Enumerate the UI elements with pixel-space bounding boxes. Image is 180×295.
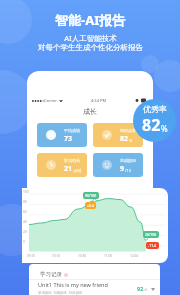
staticText: 9	[120, 164, 125, 174]
button[interactable]: 优秀率	[133, 99, 176, 142]
staticText: 100	[23, 190, 29, 194]
button[interactable]: Unit1 This is my new friend	[29, 280, 160, 295]
button[interactable]: 平均成绩	[37, 123, 87, 147]
staticText: 4:34 PM	[91, 98, 107, 103]
staticText: 10:10	[52, 254, 61, 258]
staticText: 82	[120, 134, 129, 144]
staticText: +6.4	[87, 203, 94, 208]
staticText: 对每个学生生成个性化分析报告	[38, 43, 143, 52]
staticText: 92	[137, 285, 144, 292]
staticText: 成长	[83, 107, 97, 116]
staticText: 12:04	[130, 254, 139, 258]
staticText: 82	[142, 114, 161, 136]
staticText: 21	[64, 164, 73, 174]
staticText: 学习时长	[64, 158, 80, 163]
staticText: 知识点掌握	[120, 128, 140, 133]
staticText: 80	[23, 200, 27, 204]
staticText: 小时	[73, 168, 81, 173]
staticText: %	[161, 123, 168, 134]
staticText: 60	[23, 210, 27, 214]
staticText: 73	[64, 134, 73, 144]
staticText: /12	[125, 168, 132, 173]
staticText: Carrier	[44, 98, 58, 103]
staticText: 单词训练 句型训练 对话训练	[38, 290, 83, 295]
button[interactable]: 知识点掌握	[93, 123, 143, 147]
staticText: 20	[23, 230, 27, 234]
staticText: 平均成绩	[64, 128, 80, 133]
staticText: 96/100	[85, 193, 97, 198]
staticText: AI人工智能技术	[64, 33, 117, 43]
staticText: 26/100	[145, 232, 157, 237]
staticText: 09:10	[27, 254, 36, 258]
staticText: 优秀率	[143, 104, 167, 114]
staticText: %	[129, 138, 133, 143]
staticText: 0	[23, 240, 25, 244]
staticText: 智能-AI报告	[55, 11, 126, 29]
button[interactable]: 学习时长	[37, 153, 87, 177]
staticText: -11.4	[148, 243, 157, 248]
staticText: 分	[144, 288, 148, 292]
staticText: 10:30	[78, 254, 87, 258]
staticText: 完成情况	[120, 158, 136, 163]
staticText: 40	[23, 220, 27, 224]
button[interactable]: 完成情况	[93, 153, 143, 177]
staticText: 11:00	[104, 254, 113, 258]
staticText: Unit1 This is my new friend	[38, 281, 108, 288]
staticText: 学习记录	[40, 271, 62, 278]
